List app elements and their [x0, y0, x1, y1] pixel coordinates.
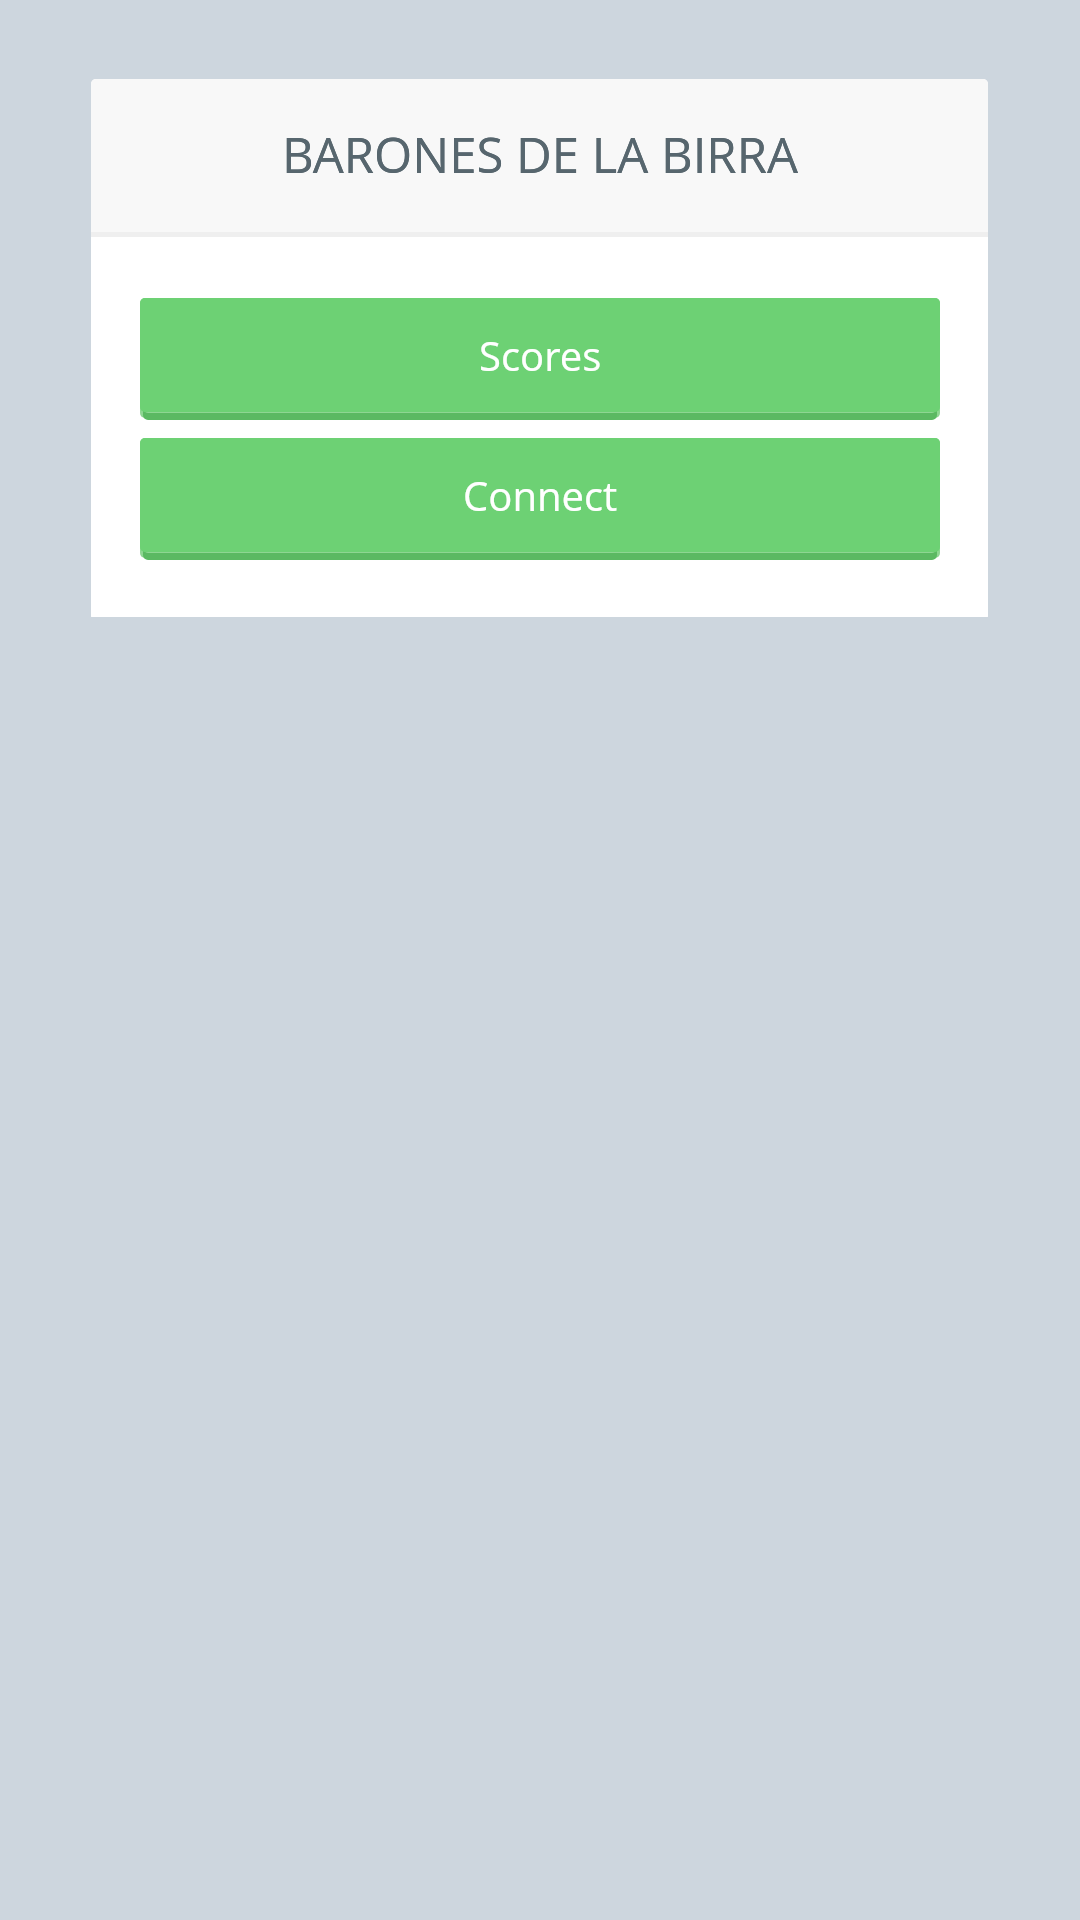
staticText: BARONES DE LA BIRRA [282, 121, 798, 188]
button[interactable]: Connect [140, 438, 940, 560]
staticText: Scores [479, 328, 602, 382]
button[interactable]: Scores [140, 298, 940, 420]
staticText: Connect [463, 468, 618, 522]
